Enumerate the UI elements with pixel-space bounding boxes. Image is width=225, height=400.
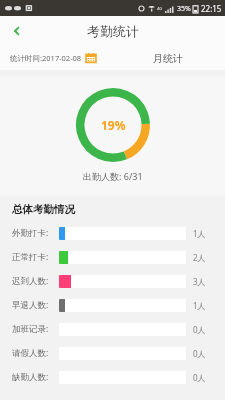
staticText: 早退人数: — [12, 299, 49, 311]
staticText: 正常打卡: — [12, 251, 49, 263]
button[interactable]: Back — [0, 16, 34, 46]
staticText: 0人 — [193, 324, 206, 335]
staticText: 0人 — [193, 348, 206, 359]
button[interactable]: 统计时间:2017-02-08 — [10, 53, 96, 63]
button[interactable]: 缺勤人数: — [0, 366, 225, 388]
staticText: 4G — [157, 6, 163, 11]
staticText: 月统计 — [153, 52, 183, 65]
button[interactable]: 正常打卡: — [0, 246, 225, 268]
staticText: 请假人数: — [12, 347, 49, 359]
staticText: 19% — [101, 117, 126, 133]
staticText: 1人 — [193, 228, 206, 239]
staticText: 缺勤人数: — [12, 371, 49, 383]
staticText: 总体考勤情况 — [12, 203, 75, 216]
staticText: 外勤打卡: — [12, 227, 49, 239]
staticText: 统计时间:2017-02-08 — [10, 53, 82, 63]
staticText: 3人 — [193, 276, 206, 287]
staticText: 35% — [177, 4, 191, 14]
button[interactable]: 迟到人数: — [0, 270, 225, 292]
staticText: 加班记录: — [12, 323, 49, 335]
staticText: 2人 — [193, 252, 206, 263]
staticText: 1人 — [193, 300, 206, 311]
button[interactable]: 外勤打卡: — [0, 222, 225, 244]
staticText: 出勤人数: 6/31 — [83, 170, 143, 182]
staticText: 迟到人数: — [12, 275, 49, 287]
button[interactable]: 请假人数: — [0, 342, 225, 364]
button[interactable]: 加班记录: — [0, 318, 225, 340]
staticText: 0人 — [193, 372, 206, 383]
staticText: 22:15 — [201, 3, 222, 14]
button[interactable]: 月统计 — [153, 52, 183, 65]
staticText: 考勤统计 — [87, 23, 139, 39]
button[interactable]: 早退人数: — [0, 294, 225, 316]
